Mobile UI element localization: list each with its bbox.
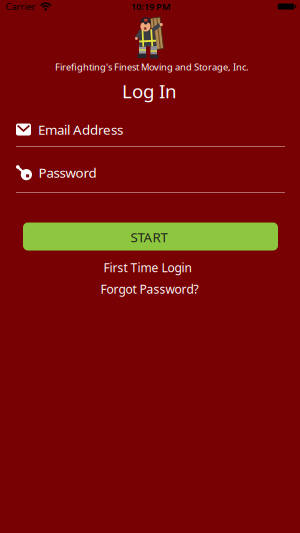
button[interactable]: Email Address bbox=[0, 116, 300, 149]
staticText: Log In bbox=[122, 79, 177, 103]
button[interactable]: START bbox=[23, 222, 278, 250]
staticText: Password bbox=[38, 164, 96, 181]
staticText: First Time Login bbox=[103, 260, 191, 276]
staticText: START bbox=[130, 228, 167, 246]
staticText: Email Address bbox=[38, 121, 123, 138]
staticText: Firefighting's Finest Moving and Storage… bbox=[55, 61, 249, 73]
button[interactable]: Forgot Password? bbox=[94, 278, 204, 300]
staticText: 10:19 PM bbox=[131, 0, 171, 13]
staticText: Carrier bbox=[5, 0, 35, 13]
staticText: Forgot Password? bbox=[100, 281, 198, 297]
button[interactable]: First Time Login bbox=[97, 257, 197, 279]
button[interactable]: Password bbox=[0, 159, 300, 195]
